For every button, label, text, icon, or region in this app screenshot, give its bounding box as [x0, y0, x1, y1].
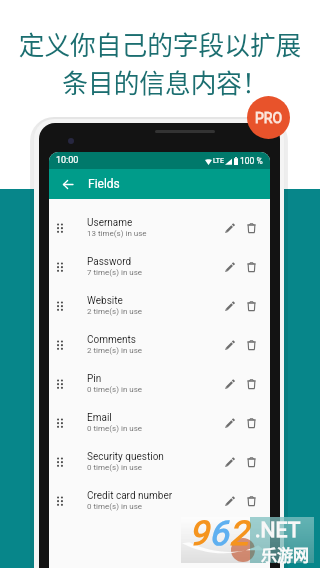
button[interactable]: Edit: [218, 334, 240, 356]
staticText: 10:00: [56, 155, 79, 166]
button[interactable]: Edit: [218, 256, 240, 278]
staticText: 6: [209, 513, 229, 553]
staticText: 13 time(s) in use: [87, 229, 147, 238]
staticText: Email: [87, 412, 112, 424]
button[interactable]: Edit: [218, 373, 240, 395]
button[interactable]: Delete: [240, 373, 262, 395]
staticText: 100 %: [240, 156, 263, 166]
button[interactable]: Edit: [218, 490, 240, 512]
staticText: 0 time(s) in use: [87, 385, 143, 394]
button[interactable]: Pin: [49, 364, 270, 403]
button[interactable]: Delete: [240, 490, 262, 512]
button[interactable]: Delete: [240, 334, 262, 356]
button[interactable]: Edit: [218, 217, 240, 239]
staticText: LTE: [213, 157, 224, 165]
staticText: 0 time(s) in use: [87, 424, 143, 433]
button[interactable]: Website: [49, 286, 270, 325]
staticText: 2: [229, 513, 249, 553]
button[interactable]: Delete: [240, 412, 262, 434]
button[interactable]: Edit: [218, 412, 240, 434]
button[interactable]: Delete: [240, 256, 262, 278]
button[interactable]: Email: [49, 403, 270, 442]
button[interactable]: Edit: [218, 451, 240, 473]
staticText: 0 time(s) in use: [87, 502, 143, 511]
button[interactable]: Comments: [49, 325, 270, 364]
staticText: Pin: [87, 373, 102, 385]
staticText: .NET: [255, 518, 301, 543]
button[interactable]: Edit: [218, 295, 240, 317]
staticText: Username: [87, 217, 133, 229]
button[interactable]: PRO: [247, 96, 290, 139]
staticText: PRO: [255, 110, 283, 126]
staticText: Credit card number: [87, 490, 173, 502]
button[interactable]: Back: [53, 169, 83, 199]
button[interactable]: Delete: [240, 295, 262, 317]
staticText: Password: [87, 256, 132, 268]
staticText: 2 time(s) in use: [87, 307, 143, 316]
button[interactable]: Credit card number: [49, 481, 270, 520]
staticText: Fields: [88, 177, 120, 191]
staticText: 条目的信息内容！: [5, 63, 320, 100]
staticText: 0 time(s) in use: [87, 463, 143, 472]
button[interactable]: Security question: [49, 442, 270, 481]
staticText: 2 time(s) in use: [87, 346, 143, 355]
staticText: 9: [189, 513, 209, 553]
button[interactable]: Delete: [240, 217, 262, 239]
staticText: Security question: [87, 451, 164, 463]
staticText: Website: [87, 295, 123, 307]
staticText: Comments: [87, 334, 137, 346]
button[interactable]: Delete: [240, 451, 262, 473]
button[interactable]: Username: [49, 208, 270, 247]
staticText: 定义你自己的字段以扩展: [0, 25, 320, 62]
staticText: 7 time(s) in use: [87, 268, 143, 277]
button[interactable]: Password: [49, 247, 270, 286]
staticText: 乐游网: [261, 542, 310, 565]
